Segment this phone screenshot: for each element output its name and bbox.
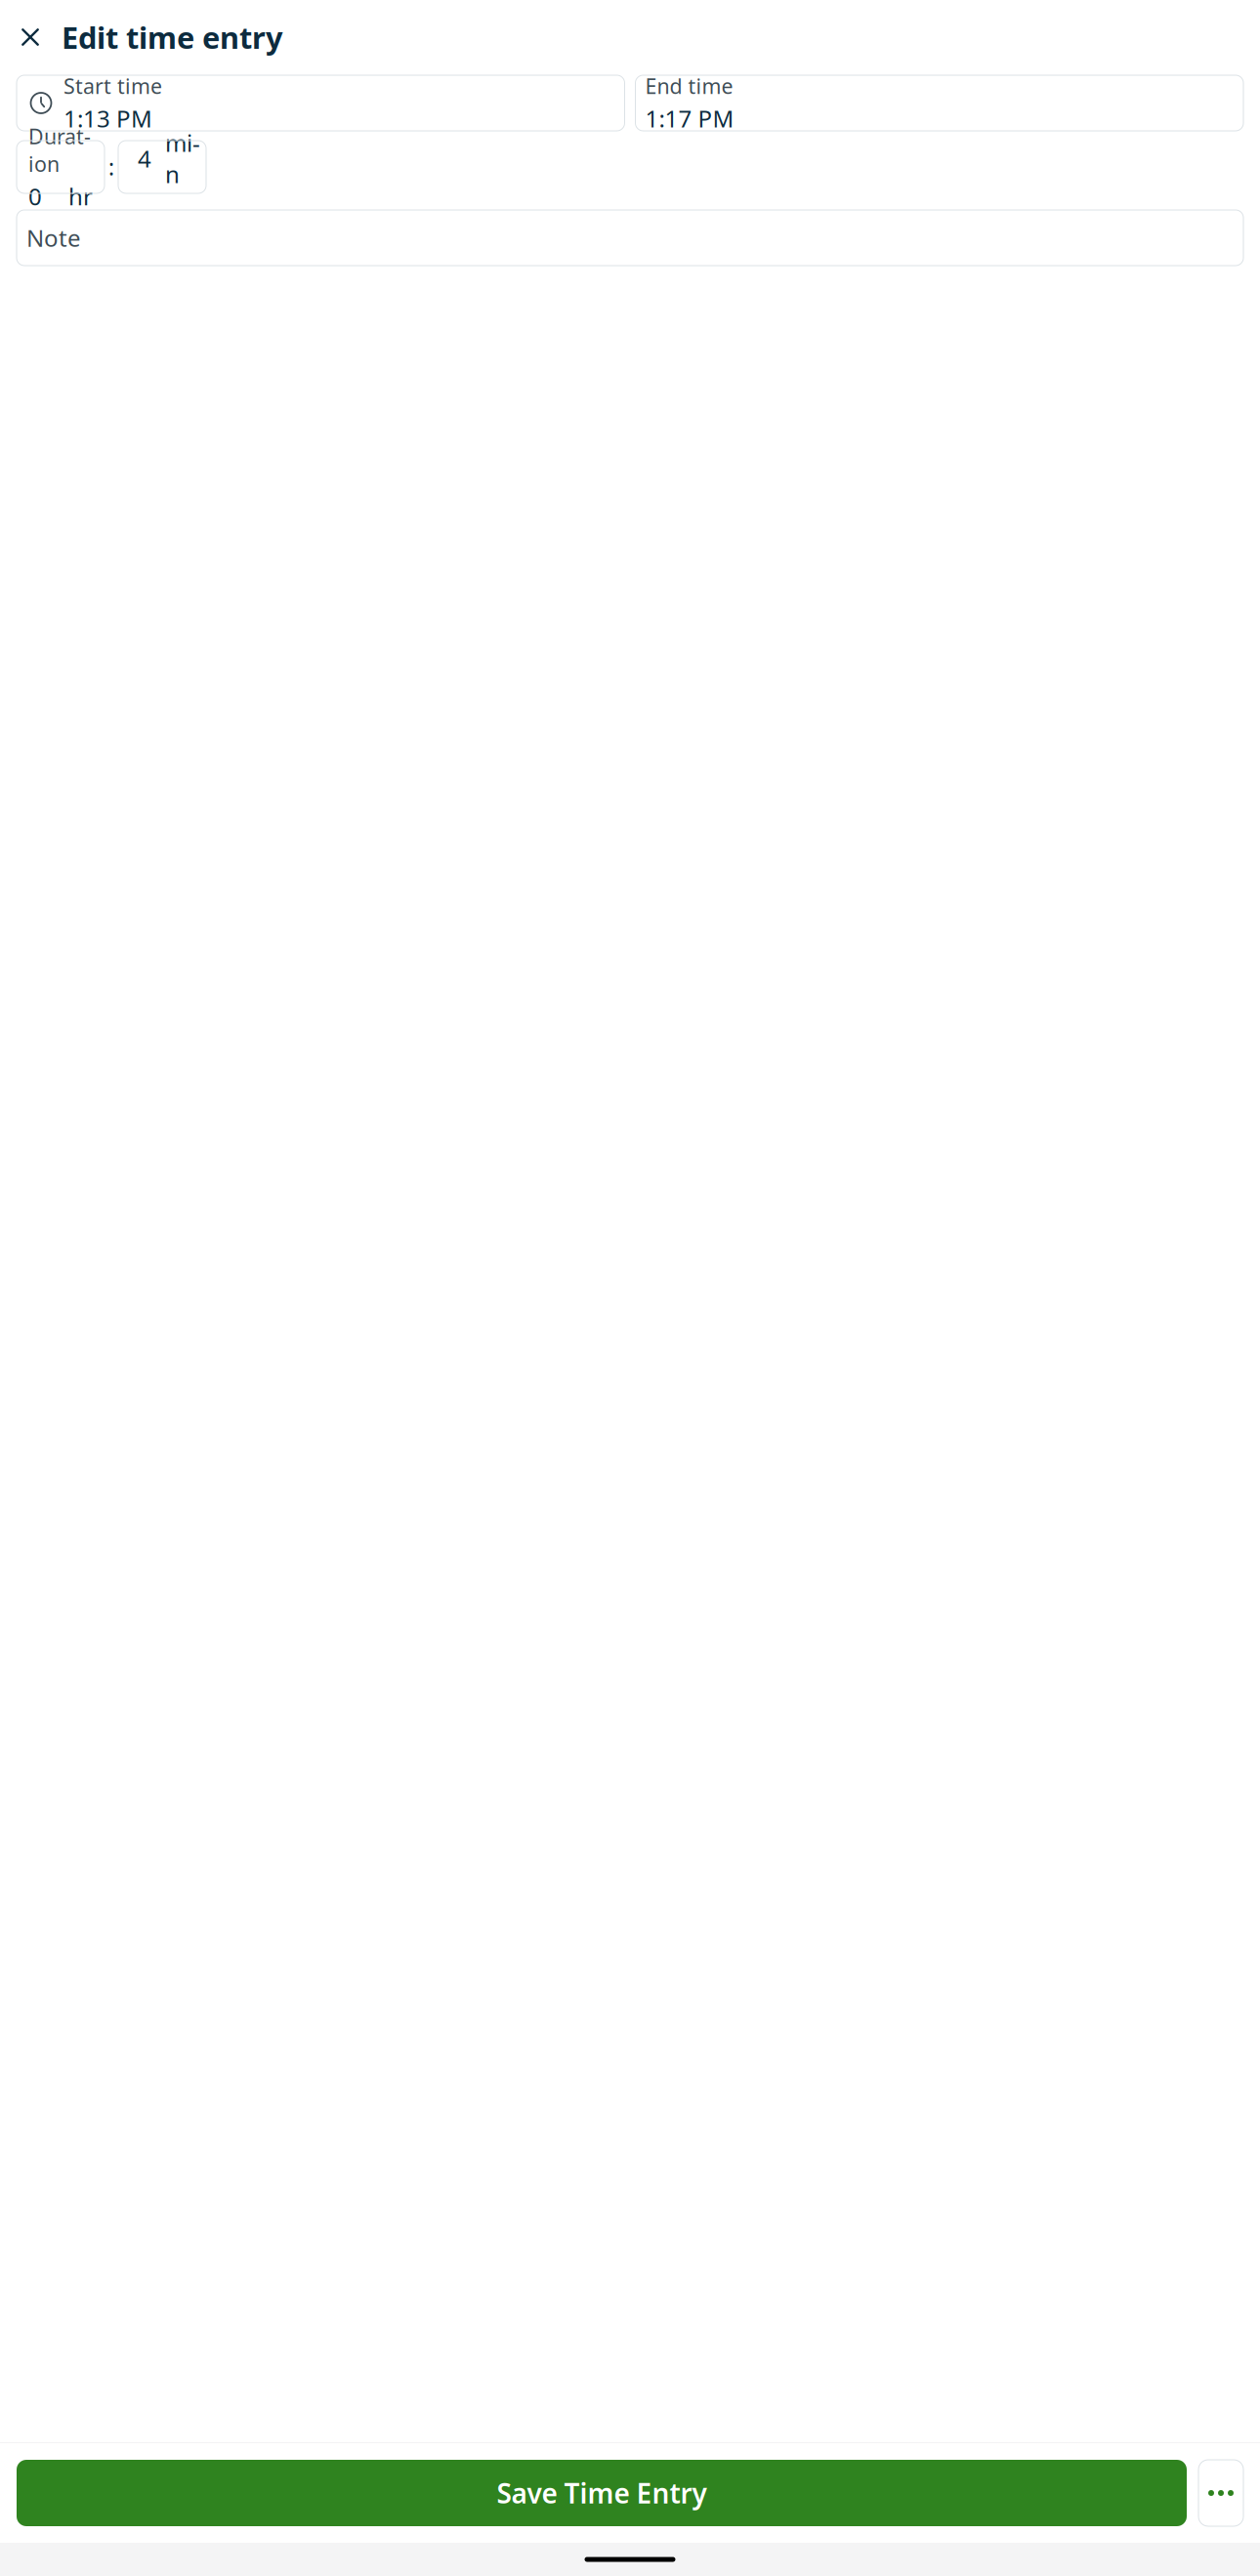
button[interactable]: Save Time Entry — [17, 2460, 1187, 2526]
button[interactable]: End time — [635, 75, 1243, 131]
staticText: End time — [645, 72, 733, 100]
button[interactable]: More options — [1198, 2460, 1243, 2526]
staticText: Note — [26, 222, 81, 253]
staticText: Start time — [63, 72, 162, 100]
staticText: 0 — [28, 181, 42, 212]
button[interactable]: Start time — [17, 75, 625, 131]
staticText: : — [108, 152, 114, 182]
staticText: min — [165, 127, 200, 189]
button[interactable]: Close — [11, 18, 50, 57]
button[interactable]: Note — [17, 210, 1243, 266]
staticText: Duration — [28, 122, 91, 178]
staticText: 4 — [138, 143, 151, 174]
staticText: 1:17 PM — [645, 103, 734, 134]
staticText: Edit time entry — [62, 17, 283, 57]
staticText: Save Time Entry — [497, 2475, 707, 2511]
button[interactable]: Duration — [17, 141, 105, 193]
staticText: 1:13 PM — [63, 103, 152, 134]
button[interactable]: 4 — [118, 141, 206, 193]
staticText: hr — [68, 181, 93, 212]
